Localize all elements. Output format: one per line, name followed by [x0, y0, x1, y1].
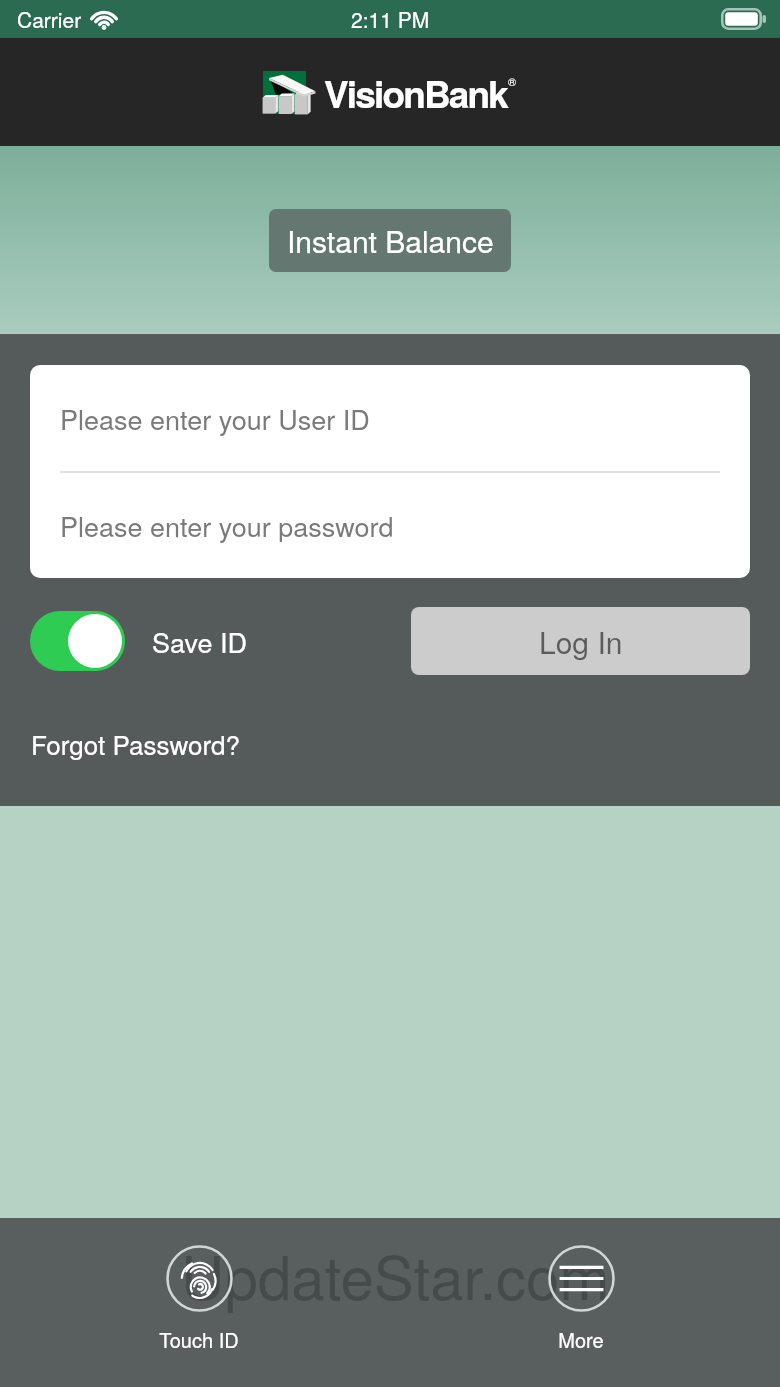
staticText: Forgot Password? [31, 725, 241, 762]
staticText: ® [508, 73, 517, 89]
staticText: UpdateStar.com [181, 1231, 610, 1317]
staticText: 2:11 PM [351, 4, 430, 34]
staticText: Carrier [17, 4, 82, 34]
staticText: VisionBank [324, 66, 508, 119]
button[interactable]: Forgot Password? [31, 725, 241, 762]
button[interactable]: More [521, 1245, 641, 1354]
staticText: Please enter your User ID [60, 399, 370, 438]
staticText: Instant Balance [287, 219, 494, 262]
button[interactable]: Log In [411, 607, 750, 675]
button[interactable]: Save ID toggle [30, 611, 125, 671]
staticText: More [558, 1325, 604, 1354]
staticText: Save ID [152, 622, 247, 661]
button[interactable]: Instant Balance [269, 209, 511, 272]
button[interactable]: Touch ID [139, 1245, 259, 1354]
button[interactable]: Please enter your User ID [30, 365, 750, 471]
staticText: Touch ID [159, 1325, 239, 1354]
button[interactable]: Please enter your password [30, 473, 750, 578]
staticText: Log In [539, 620, 623, 663]
staticText: Please enter your password [60, 506, 394, 545]
